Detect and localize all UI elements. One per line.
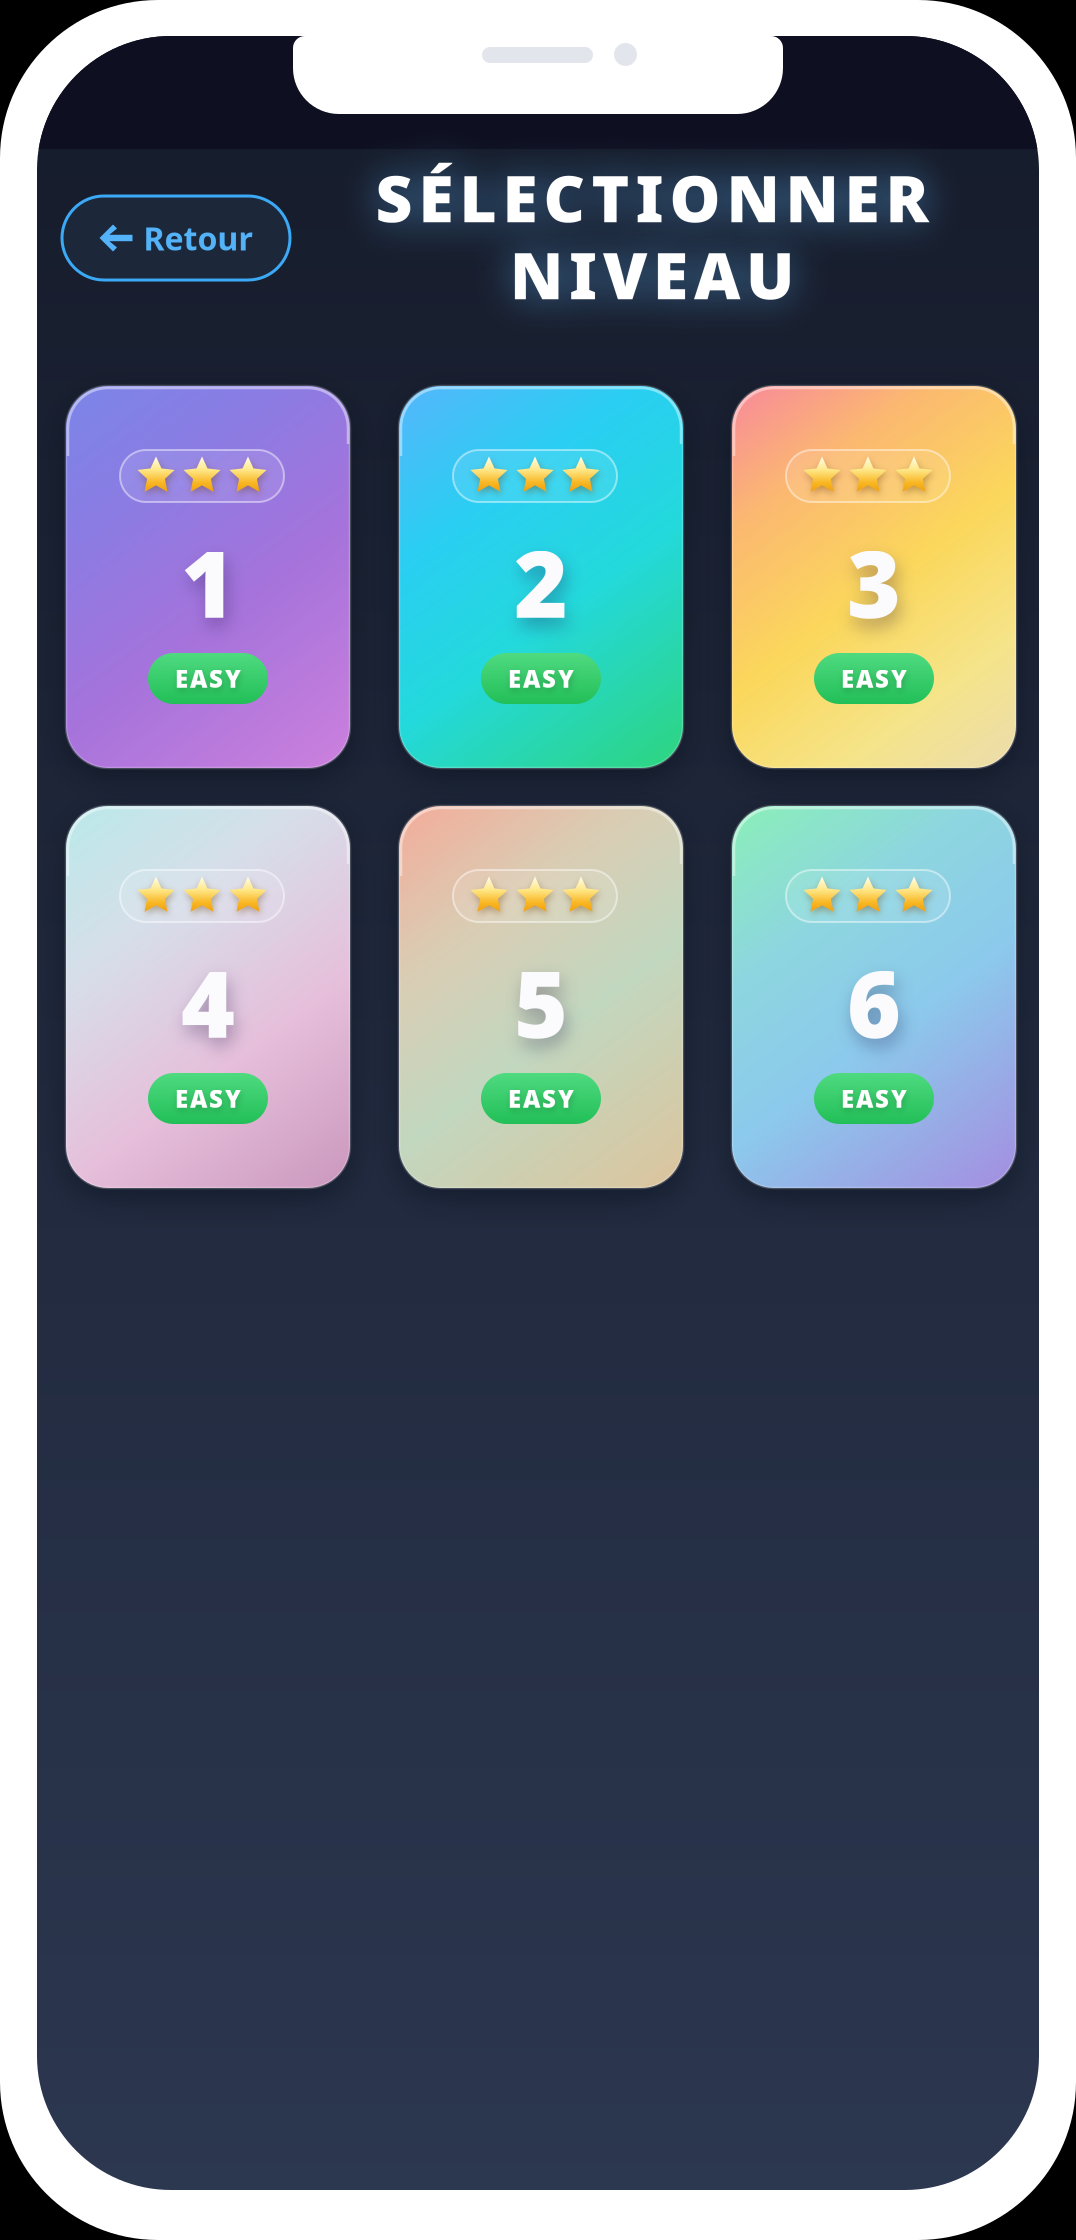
staticText: Retour	[143, 217, 252, 259]
button[interactable]: Retour	[62, 196, 290, 280]
staticText: E A S Y	[508, 663, 574, 694]
staticText: 2	[514, 521, 568, 643]
button[interactable]: 3	[732, 386, 1016, 768]
staticText: 6	[847, 941, 901, 1063]
button[interactable]: 4	[66, 806, 350, 1188]
staticText: 4	[181, 941, 235, 1063]
staticText: 5	[514, 941, 568, 1063]
staticText: E A S Y	[175, 663, 241, 694]
staticText: E A S Y	[175, 1083, 241, 1114]
staticText: 3	[847, 521, 901, 643]
staticText: S É L E C T I O N N E R	[375, 155, 928, 240]
staticText: E A S Y	[841, 663, 907, 694]
button[interactable]: 1	[66, 386, 350, 768]
staticText: E A S Y	[508, 1083, 574, 1114]
button[interactable]: 6	[732, 806, 1016, 1188]
button[interactable]: 5	[399, 806, 683, 1188]
staticText: E A S Y	[841, 1083, 907, 1114]
staticText: 1	[181, 521, 235, 643]
button[interactable]: 2	[399, 386, 683, 768]
staticText: N I V E A U	[510, 232, 794, 317]
